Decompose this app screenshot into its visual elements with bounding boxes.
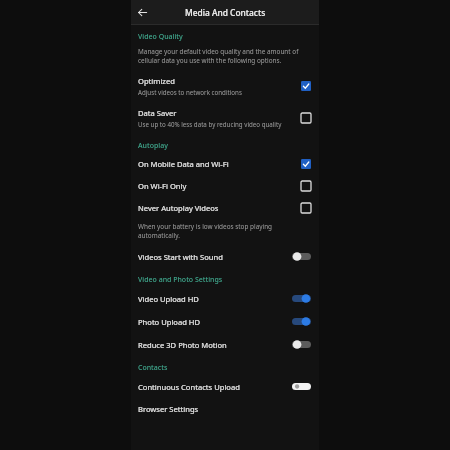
staticText: Continuous Contacts Upload [138,382,240,392]
staticText: Video Upload HD [138,294,199,304]
staticText: When your battery is low videos stop pla… [138,222,303,240]
staticText: Video Quality [138,32,183,42]
button[interactable]: Optimized [131,70,319,102]
button[interactable]: Videos Start with Sound [131,245,319,268]
button[interactable]: Never Autoplay Videos [131,197,319,219]
button[interactable]: Reduce 3D Photo Motion [131,333,319,356]
staticText: Photo Upload HD [138,317,201,327]
staticText: Optimized [138,76,175,86]
staticText: Manage your default video quality and th… [138,47,303,65]
staticText: Data Saver [138,108,177,118]
button[interactable]: On Mobile Data and Wi-Fi [131,153,319,175]
staticText: Media And Contacts [185,7,266,18]
staticText: Browser Settings [138,404,199,414]
button[interactable]: Photo Upload HD [131,310,319,333]
button[interactable]: Browser Settings [131,398,319,420]
staticText: Reduce 3D Photo Motion [138,340,227,350]
staticText: Videos Start with Sound [138,252,223,262]
button[interactable]: On Wi-Fi Only [131,175,319,197]
button[interactable]: Continuous Contacts Upload [131,375,319,398]
staticText: On Wi-Fi Only [138,181,187,191]
staticText: Use up to 40% less data by reducing vide… [138,120,282,128]
staticText: Autoplay [138,141,168,151]
staticText: Video and Photo Settings [138,275,223,285]
staticText: Never Autoplay Videos [138,203,219,213]
staticText: Adjust videos to network conditions [138,88,242,96]
button[interactable]: Video Upload HD [131,287,319,310]
button[interactable]: Back [134,4,150,20]
button[interactable]: Data Saver [131,102,319,134]
staticText: Contacts [138,363,168,373]
staticText: On Mobile Data and Wi-Fi [138,159,229,169]
